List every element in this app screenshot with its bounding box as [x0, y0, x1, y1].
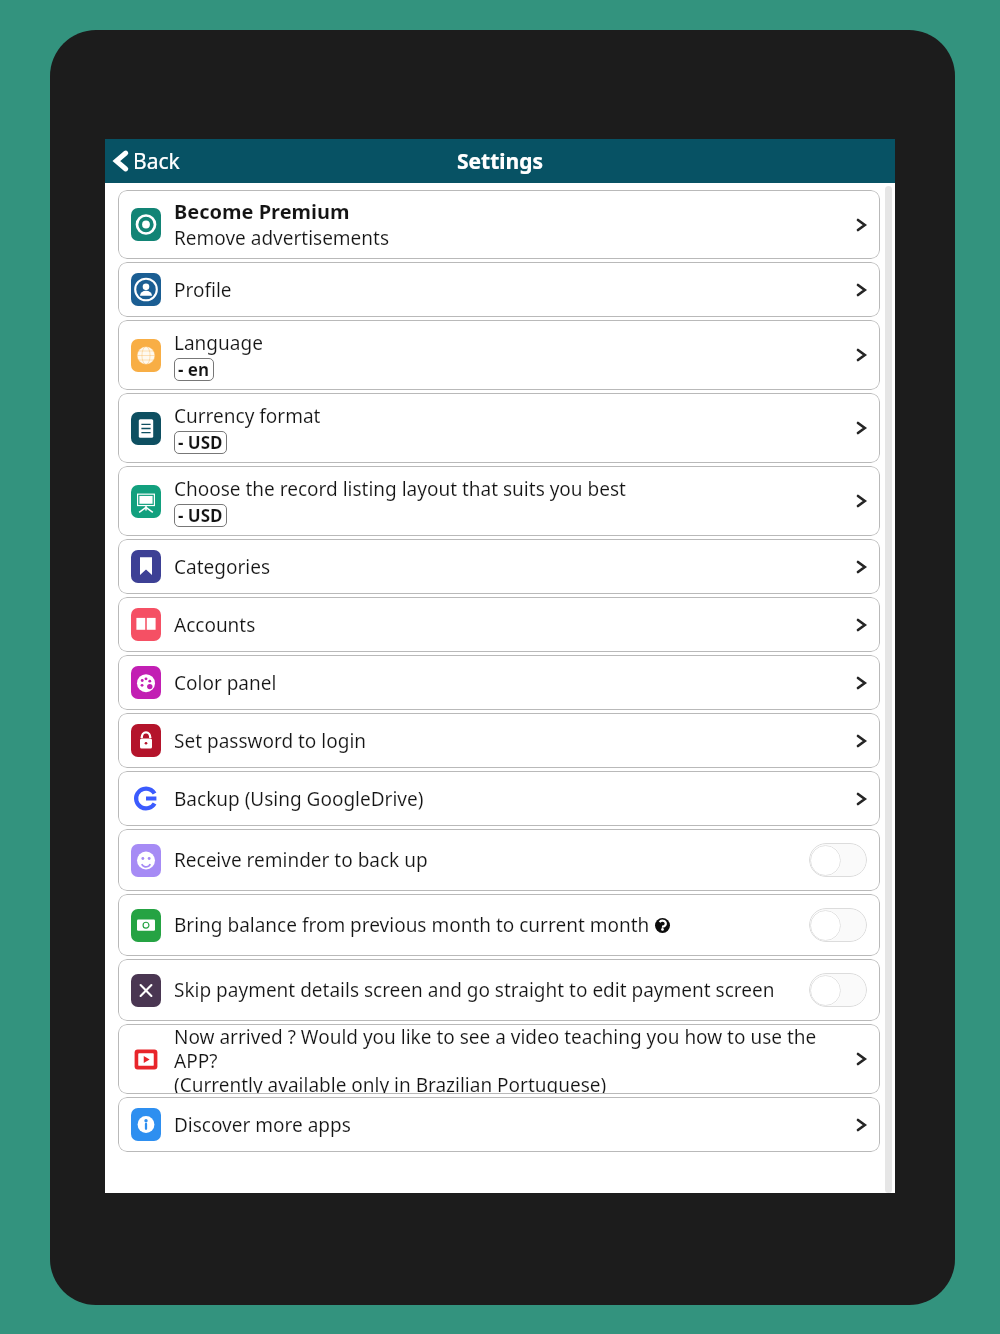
staticText: Set password to login — [174, 728, 856, 754]
staticText: Categories — [174, 554, 856, 580]
staticText: Receive reminder to back up — [174, 847, 428, 873]
button[interactable]: Receive reminder to back up — [118, 829, 880, 891]
button[interactable]: Toggle Receive reminder to back up — [809, 843, 867, 877]
staticText: Currency format — [174, 403, 321, 429]
staticText: Settings — [457, 147, 544, 176]
button[interactable]: Accounts — [118, 597, 880, 652]
button[interactable]: Back — [105, 139, 192, 183]
staticText: Bring balance from previous month to cur… — [174, 912, 650, 938]
staticText: Choose the record listing layout that su… — [174, 476, 626, 502]
button[interactable]: Set password to login — [118, 713, 880, 768]
button[interactable]: Toggle Bring balance from previous month… — [809, 908, 867, 942]
staticText: - en — [178, 358, 210, 381]
button[interactable]: Become Premium — [118, 190, 880, 259]
staticText: Profile — [174, 277, 856, 303]
button[interactable]: Skip payment details screen and go strai… — [118, 959, 880, 1021]
staticText: - USD — [178, 504, 223, 527]
staticText: Language — [174, 330, 263, 356]
staticText: Become Premium — [174, 198, 350, 225]
button[interactable]: Categories — [118, 539, 880, 594]
staticText: Now arrived ? Would you like to see a vi… — [174, 1024, 856, 1094]
button[interactable]: Toggle Skip payment details screen and g… — [809, 973, 867, 1007]
staticText: Remove advertisements — [174, 225, 390, 251]
button[interactable]: Profile — [118, 262, 880, 317]
button[interactable]: Backup (Using GoogleDrive) — [118, 771, 880, 826]
staticText: Color panel — [174, 670, 856, 696]
button[interactable]: Choose the record listing layout that su… — [118, 466, 880, 536]
staticText: Accounts — [174, 612, 856, 638]
staticText: - USD — [178, 431, 223, 454]
button[interactable]: Color panel — [118, 655, 880, 710]
button[interactable]: Discover more apps — [118, 1097, 880, 1152]
button[interactable]: Bring balance from previous month to cur… — [118, 894, 880, 956]
staticText: Back — [133, 147, 180, 175]
button[interactable]: Currency format — [118, 393, 880, 463]
button[interactable]: Now arrived ? Would you like to see a vi… — [118, 1024, 880, 1094]
staticText: Backup (Using GoogleDrive) — [174, 786, 856, 812]
staticText: Skip payment details screen and go strai… — [174, 977, 775, 1003]
staticText: Discover more apps — [174, 1112, 856, 1138]
button[interactable]: Language — [118, 320, 880, 390]
